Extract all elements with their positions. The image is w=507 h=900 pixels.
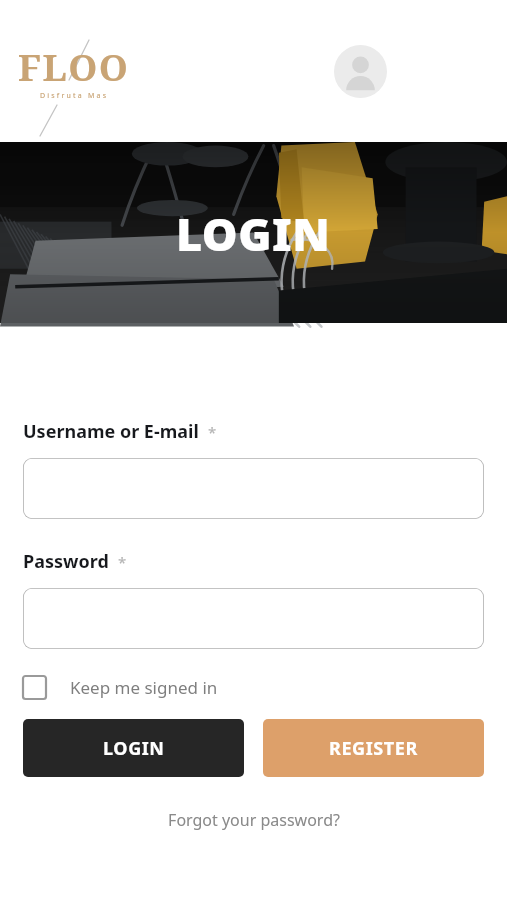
staticText: Username or E-mail xyxy=(23,419,199,444)
button[interactable] xyxy=(23,458,484,519)
button[interactable]: Forgot your password? xyxy=(168,809,340,831)
staticText: * xyxy=(208,422,217,442)
button[interactable]: REGISTER xyxy=(263,719,484,777)
button[interactable]: Keep me signed in xyxy=(23,676,218,699)
staticText: Password xyxy=(23,549,109,574)
button[interactable]: LOGIN xyxy=(23,719,244,777)
staticText: Keep me signed in xyxy=(70,676,218,699)
staticText: Disfruta Mas xyxy=(40,91,109,101)
button[interactable]: Account xyxy=(334,45,387,98)
staticText: LOGIN xyxy=(176,203,331,264)
staticText: REGISTER xyxy=(329,736,418,761)
staticText: FLOO xyxy=(18,41,130,91)
staticText: * xyxy=(118,552,127,572)
staticText: LOGIN xyxy=(103,736,165,761)
button[interactable] xyxy=(23,588,484,649)
